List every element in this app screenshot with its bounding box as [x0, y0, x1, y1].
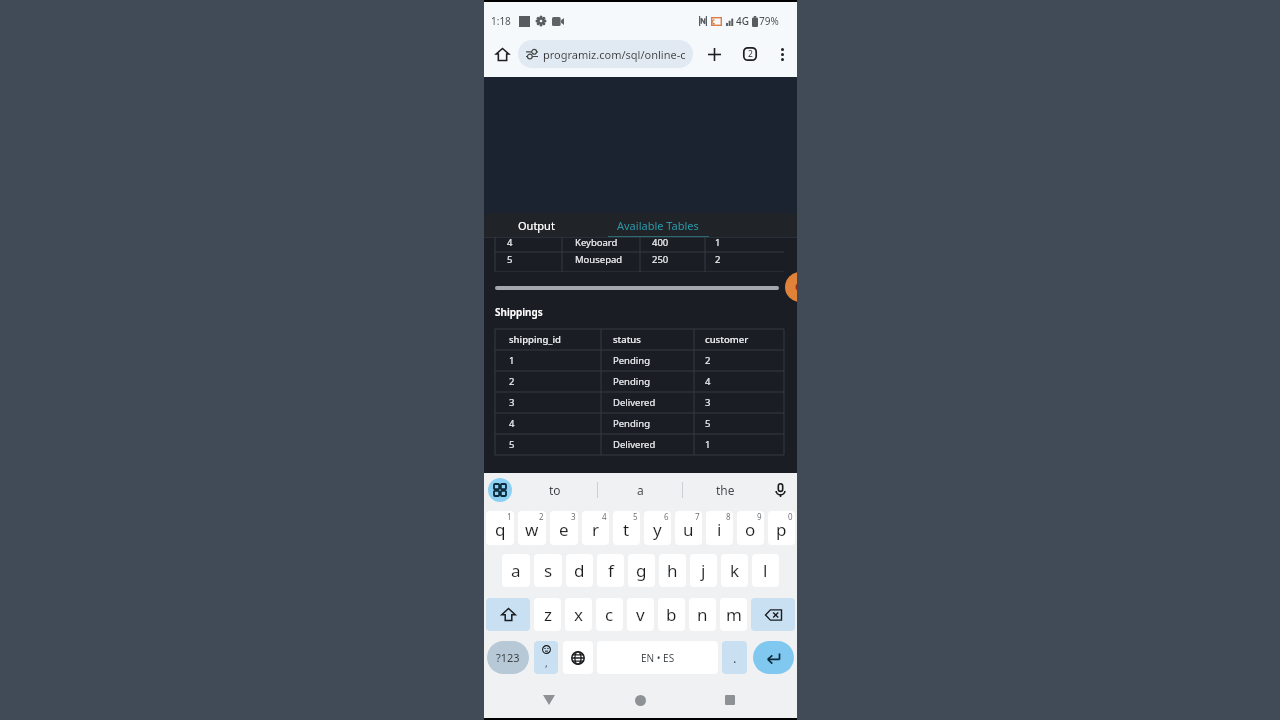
staticText: r — [592, 518, 600, 541]
staticText: f — [608, 559, 614, 582]
staticText: b — [666, 603, 677, 626]
button[interactable]: More options — [771, 43, 793, 65]
button[interactable]: ?123 — [487, 641, 529, 674]
staticText: m — [726, 603, 742, 626]
button[interactable]: s — [534, 554, 562, 587]
button[interactable]: 8 — [706, 511, 733, 545]
button[interactable]: Backspace — [751, 598, 795, 631]
staticText: 0 — [788, 511, 793, 522]
button[interactable]: programiz.com/sql/online-c — [518, 40, 693, 68]
staticText: p — [776, 518, 787, 541]
staticText: q — [495, 518, 506, 541]
button[interactable]: x — [565, 598, 592, 631]
button[interactable]: a — [502, 554, 530, 587]
button[interactable]: Home — [489, 41, 515, 67]
staticText: . — [733, 649, 737, 667]
staticText: 4 — [509, 417, 515, 430]
staticText: 4 — [602, 511, 607, 522]
button[interactable]: Change language — [563, 641, 593, 674]
staticText: 3 — [571, 511, 576, 522]
button[interactable]: 1 — [486, 511, 514, 545]
staticText: 5 — [509, 438, 515, 451]
button[interactable]: Enter — [753, 641, 794, 674]
staticText: d — [574, 559, 585, 582]
staticText: 9 — [757, 511, 762, 522]
staticText: j — [701, 559, 706, 582]
button[interactable]: EN • ES — [597, 641, 718, 674]
button[interactable]: z — [534, 598, 561, 631]
button[interactable]: Back — [533, 685, 565, 715]
button[interactable]: to — [512, 473, 597, 507]
staticText: 4 — [507, 237, 513, 249]
button[interactable]: Shift — [486, 598, 530, 631]
button[interactable]: 2 — [518, 511, 546, 545]
staticText: 3 — [509, 396, 515, 409]
staticText: l — [763, 559, 768, 582]
button[interactable]: Available Tables — [589, 213, 727, 237]
button[interactable]: j — [690, 554, 717, 587]
staticText: Delivered — [613, 438, 656, 451]
staticText: shipping_id — [509, 333, 561, 346]
staticText: 7 — [695, 511, 700, 522]
button[interactable]: 0 — [768, 511, 795, 545]
button[interactable]: New tab — [700, 40, 728, 68]
button[interactable]: h — [659, 554, 686, 587]
staticText: Output — [518, 218, 555, 233]
staticText: Delivered — [613, 396, 656, 409]
staticText: 3 — [705, 396, 711, 409]
staticText: 250 — [652, 253, 669, 266]
staticText: 2 — [748, 48, 753, 60]
button[interactable]: Voice input — [769, 479, 791, 501]
button[interactable]: 9 — [737, 511, 764, 545]
button[interactable]: a — [598, 473, 682, 507]
button[interactable]: Emoji and comma — [534, 641, 558, 674]
staticText: o — [745, 518, 756, 541]
staticText: k — [730, 559, 740, 582]
button[interactable]: Tabs — [736, 40, 764, 68]
button[interactable]: Apps — [488, 478, 512, 502]
staticText: e — [559, 518, 569, 541]
button[interactable]: m — [720, 598, 747, 631]
staticText: 2 — [509, 375, 515, 388]
button[interactable]: the — [683, 473, 767, 507]
staticText: t — [623, 518, 630, 541]
staticText: EN • ES — [641, 651, 675, 665]
staticText: 6 — [664, 511, 669, 522]
staticText: 8 — [726, 511, 731, 522]
button[interactable]: Output — [484, 213, 589, 237]
staticText: v — [636, 603, 645, 626]
staticText: 5 — [705, 417, 711, 430]
button[interactable]: c — [596, 598, 623, 631]
staticText: 1:18 — [491, 14, 511, 28]
staticText: Shippings — [495, 305, 543, 319]
staticText: z — [544, 603, 552, 626]
staticText: x — [574, 603, 583, 626]
button[interactable]: b — [658, 598, 685, 631]
button[interactable]: l — [752, 554, 779, 587]
button[interactable]: n — [689, 598, 716, 631]
button[interactable]: v — [627, 598, 654, 631]
button[interactable]: 7 — [675, 511, 702, 545]
staticText: s — [544, 559, 553, 582]
button[interactable]: 4 — [582, 511, 609, 545]
button[interactable]: g — [628, 554, 655, 587]
staticText: 400 — [652, 237, 669, 249]
staticText: 1 — [705, 438, 711, 451]
staticText: a — [637, 482, 644, 498]
staticText: u — [683, 518, 694, 541]
staticText: Pending — [613, 375, 650, 388]
staticText: 79% — [759, 14, 779, 28]
staticText: Available Tables — [617, 218, 699, 233]
button[interactable]: Home — [624, 685, 656, 715]
button[interactable]: Recents — [714, 685, 746, 715]
button[interactable]: d — [566, 554, 593, 587]
staticText: Pending — [613, 354, 650, 367]
button[interactable]: k — [721, 554, 748, 587]
button[interactable]: 6 — [644, 511, 671, 545]
staticText: 1 — [715, 237, 721, 249]
button[interactable]: 5 — [613, 511, 640, 545]
button[interactable]: . — [722, 641, 747, 674]
button[interactable]: f — [597, 554, 624, 587]
button[interactable]: 3 — [550, 511, 578, 545]
staticText: h — [667, 559, 678, 582]
